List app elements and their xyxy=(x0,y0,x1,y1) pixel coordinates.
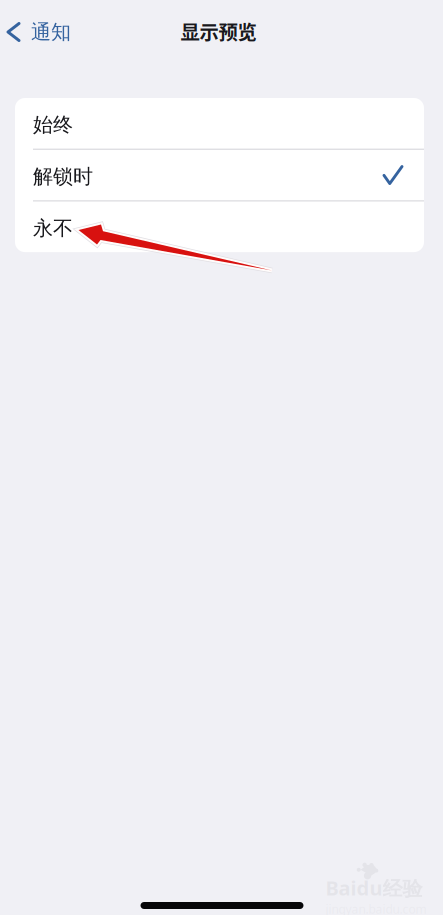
staticText: 解锁时 xyxy=(33,164,93,189)
staticText: 始终 xyxy=(33,113,73,137)
button[interactable]: 始终 xyxy=(15,98,424,149)
staticText: 永不 xyxy=(33,216,73,241)
button[interactable]: 返回通知 xyxy=(0,11,81,53)
button[interactable]: 永不 xyxy=(15,201,424,252)
staticText: 显示预览 xyxy=(180,17,256,45)
staticText: 通知 xyxy=(31,20,71,44)
staticText: Baidu经验 xyxy=(325,874,422,901)
button[interactable]: 解锁时 xyxy=(15,150,424,200)
